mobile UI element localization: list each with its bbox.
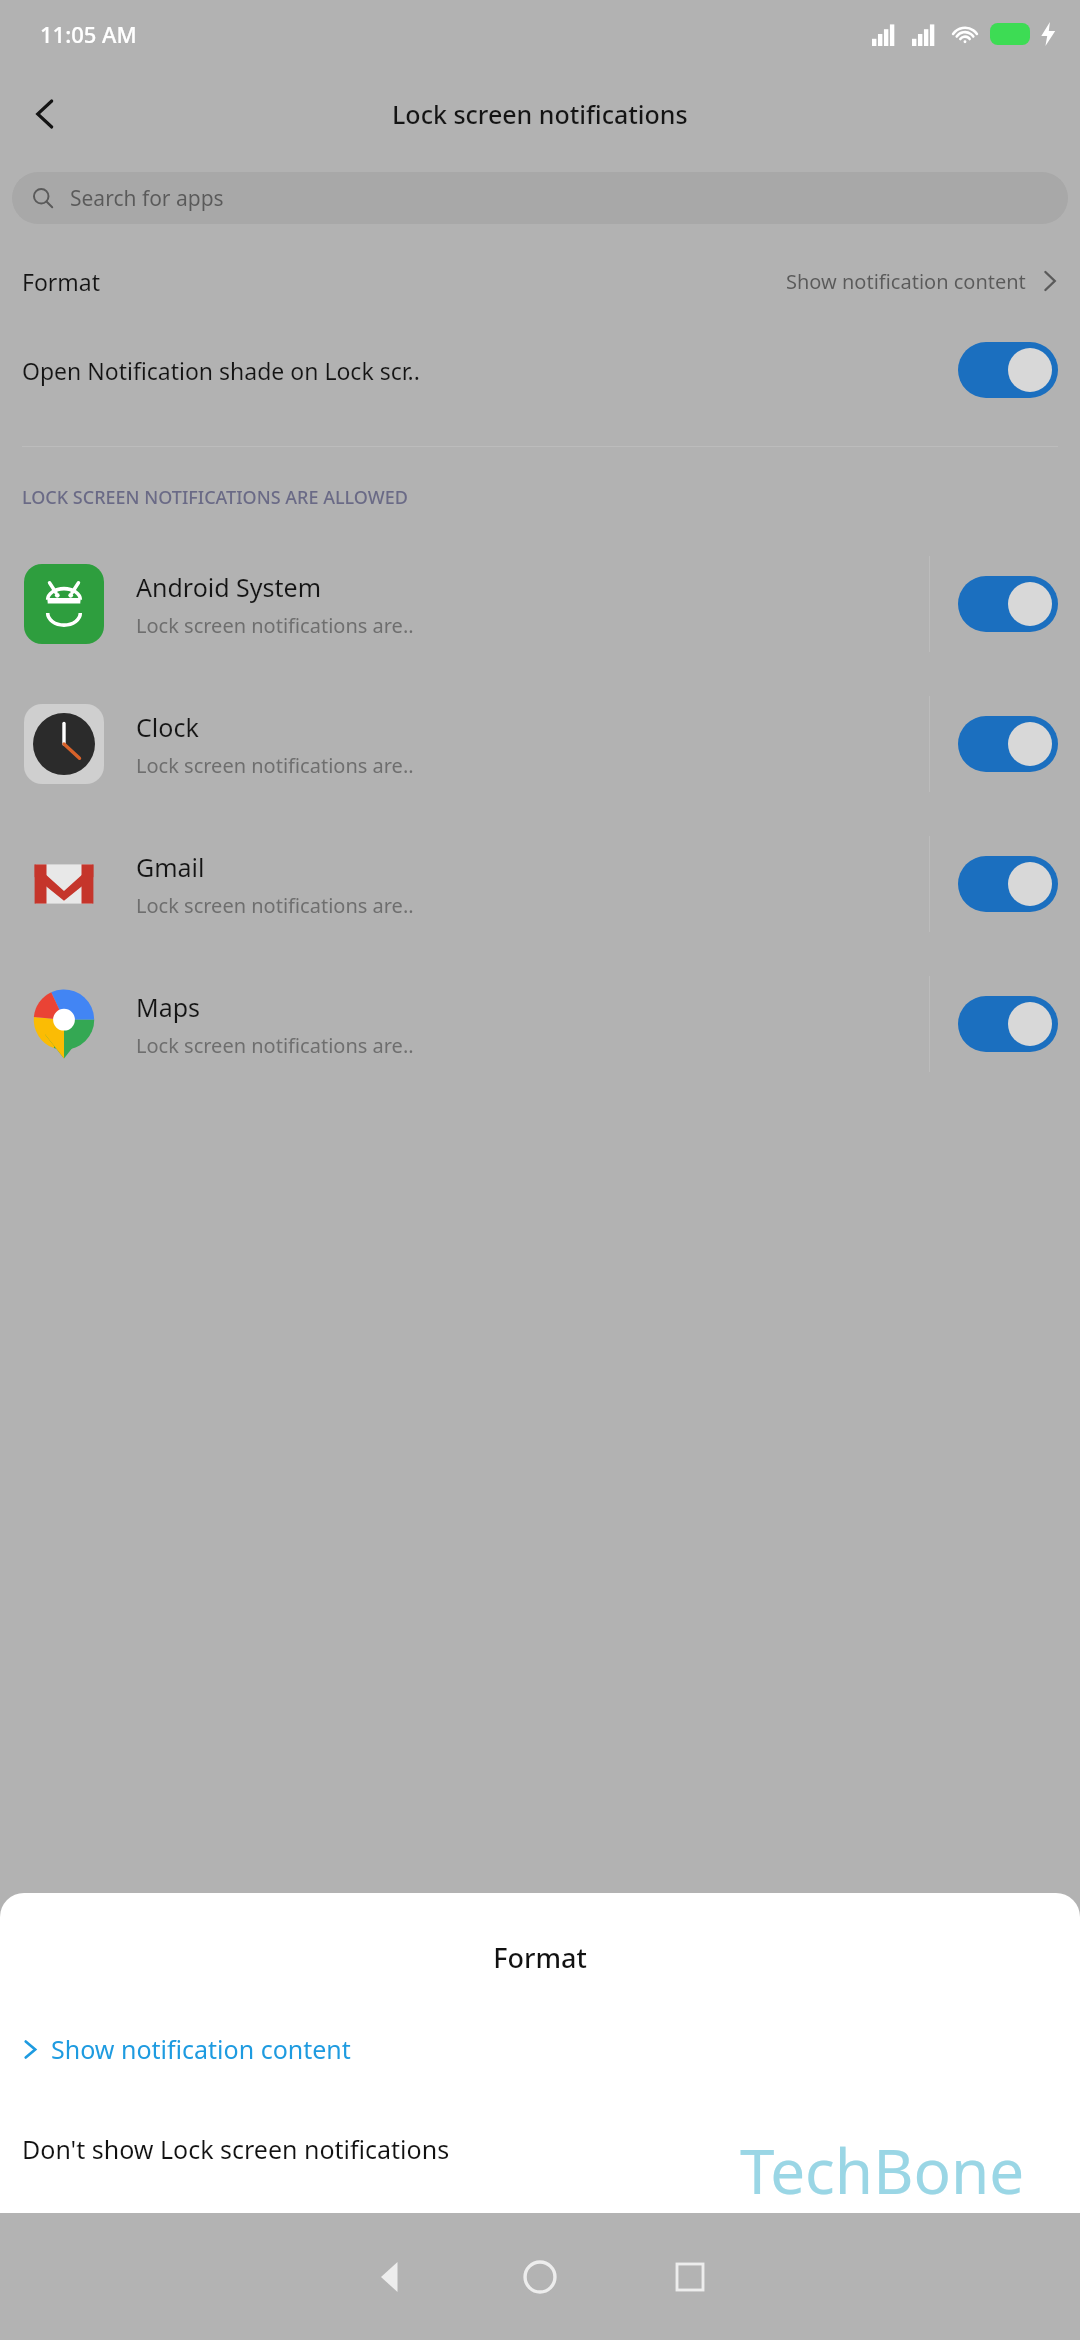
staticText: Clock: [136, 710, 199, 744]
staticText: Lock screen notifications are..: [136, 892, 414, 919]
staticText: Maps: [136, 990, 201, 1024]
staticText: Lock screen notifications are..: [136, 1032, 414, 1059]
button[interactable]: Maps: [0, 954, 1080, 1094]
staticText: Show notification content: [786, 268, 1026, 295]
button[interactable]: Home: [485, 2222, 595, 2332]
staticText: Lock screen notifications are..: [136, 752, 414, 779]
button[interactable]: Back: [10, 78, 82, 150]
button[interactable]: Gmail: [0, 814, 1080, 954]
staticText: Don't show Lock screen notifications: [22, 2132, 450, 2166]
button[interactable]: Toggle: [958, 716, 1058, 772]
button[interactable]: Toggle: [958, 342, 1058, 398]
staticText: Android System: [136, 570, 322, 604]
staticText: Open Notification shade on Lock scr..: [22, 355, 950, 386]
button[interactable]: Toggle: [958, 576, 1058, 632]
staticText: Format: [22, 266, 101, 297]
button[interactable]: Clock: [0, 674, 1080, 814]
button[interactable]: Recent apps: [635, 2222, 745, 2332]
button[interactable]: Search for apps: [12, 172, 1068, 224]
staticText: Format: [0, 1939, 1080, 1976]
button[interactable]: Toggle: [958, 856, 1058, 912]
staticText: 11:05 AM: [40, 19, 137, 49]
button[interactable]: Don't show Lock screen notifications: [0, 2118, 1080, 2180]
staticText: Lock screen notifications: [392, 97, 688, 131]
staticText: Gmail: [136, 850, 205, 884]
button[interactable]: Show notification content: [0, 2018, 1080, 2080]
button[interactable]: Android System: [0, 534, 1080, 674]
button[interactable]: Toggle: [958, 996, 1058, 1052]
staticText: TechBone: [740, 2128, 1025, 2212]
button[interactable]: Format: [0, 250, 1080, 312]
staticText: LOCK SCREEN NOTIFICATIONS ARE ALLOWED: [22, 485, 408, 510]
button[interactable]: Back: [335, 2222, 445, 2332]
button[interactable]: Open Notification shade on Lock scr..: [0, 332, 1080, 408]
staticText: Search for apps: [70, 184, 224, 213]
staticText: Lock screen notifications are..: [136, 612, 414, 639]
staticText: Show notification content: [51, 2032, 351, 2066]
